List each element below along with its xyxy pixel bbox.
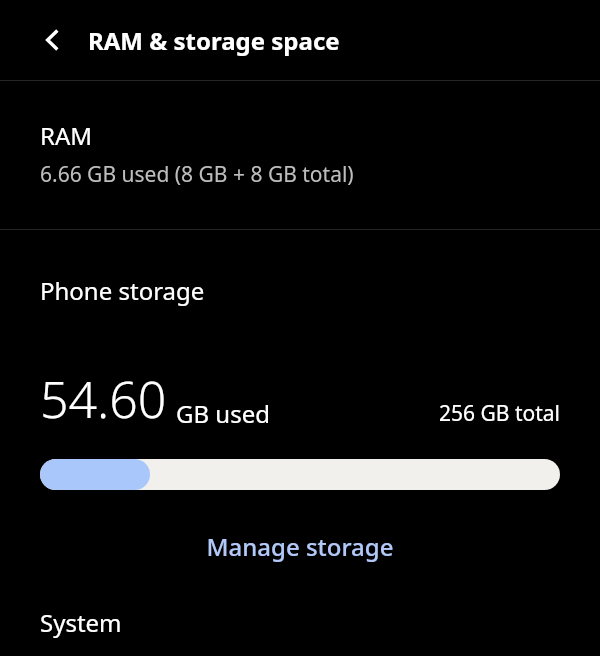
staticText: 6.66 GB used (8 GB + 8 GB total) bbox=[40, 160, 354, 189]
button[interactable]: Back bbox=[28, 16, 76, 64]
staticText: RAM & storage space bbox=[88, 24, 340, 57]
staticText: 54.60 bbox=[40, 365, 167, 433]
button[interactable]: System bbox=[0, 606, 600, 639]
staticText: RAM bbox=[40, 119, 93, 152]
staticText: GB used bbox=[176, 397, 270, 430]
staticText: Phone storage bbox=[40, 274, 205, 307]
staticText: Manage storage bbox=[206, 530, 394, 563]
button[interactable]: RAM bbox=[0, 81, 600, 229]
staticText: 256 GB total bbox=[439, 399, 560, 428]
button[interactable]: Manage storage bbox=[0, 520, 600, 572]
staticText: System bbox=[40, 606, 122, 639]
